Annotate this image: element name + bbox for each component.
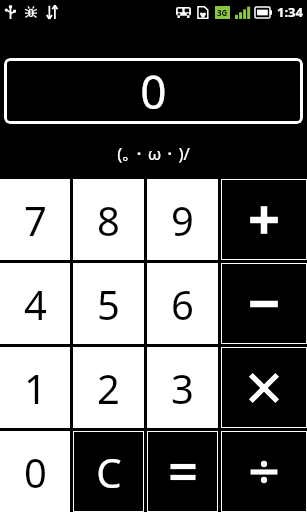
staticText: 6 — [171, 277, 194, 331]
staticText: 5 — [97, 277, 120, 331]
button[interactable]: 0 — [4, 58, 303, 124]
button[interactable]: Multiply — [221, 347, 307, 428]
button[interactable]: Equals — [147, 431, 218, 512]
button[interactable]: Plus — [221, 179, 307, 260]
staticText: (｡・ω・)/ — [117, 142, 190, 165]
staticText: 7 — [24, 193, 47, 247]
button[interactable]: Divide — [221, 431, 307, 512]
button[interactable]: 5 — [73, 263, 144, 344]
staticText: 9 — [171, 193, 194, 247]
button[interactable]: Minus — [221, 263, 307, 344]
button[interactable]: 3 — [147, 347, 218, 428]
staticText: 1 — [24, 361, 47, 415]
staticText: 3G — [217, 7, 228, 18]
staticText: 3 — [171, 361, 194, 415]
button[interactable]: 2 — [73, 347, 144, 428]
button[interactable]: 6 — [147, 263, 218, 344]
staticText: 0 — [24, 445, 47, 499]
button[interactable]: 9 — [147, 179, 218, 260]
button[interactable]: Clear — [73, 431, 144, 512]
button[interactable]: 8 — [73, 179, 144, 260]
button[interactable]: 0 — [0, 431, 70, 512]
button[interactable]: 4 — [0, 263, 70, 344]
staticText: C — [96, 445, 122, 499]
staticText: 0 — [140, 60, 167, 123]
button[interactable]: 1 — [0, 347, 70, 428]
staticText: 8 — [97, 193, 120, 247]
staticText: 4 — [24, 277, 47, 331]
button[interactable]: 7 — [0, 179, 70, 260]
staticText: 1:34 — [277, 3, 303, 21]
staticText: 2 — [97, 361, 120, 415]
